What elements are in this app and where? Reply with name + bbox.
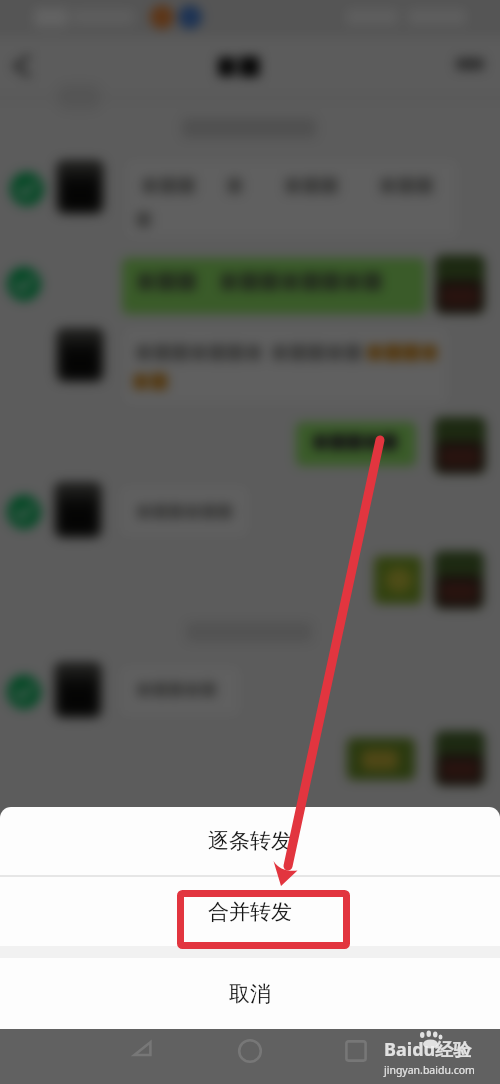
button[interactable]: 合并转发 [0, 877, 500, 946]
button[interactable]: Home [230, 1035, 270, 1075]
button[interactable]: Recents [336, 1035, 376, 1075]
staticText: 取消 [229, 981, 271, 1007]
button[interactable]: 取消 [0, 958, 500, 1029]
staticText: jingyan.baidu.com [384, 1063, 475, 1077]
button[interactable]: Back [124, 1035, 164, 1075]
button[interactable]: 逐条转发 [0, 807, 500, 875]
staticText: 合并转发 [208, 899, 292, 925]
staticText: 逐条转发 [208, 828, 292, 854]
staticText: Baidu经验 [384, 1037, 472, 1062]
